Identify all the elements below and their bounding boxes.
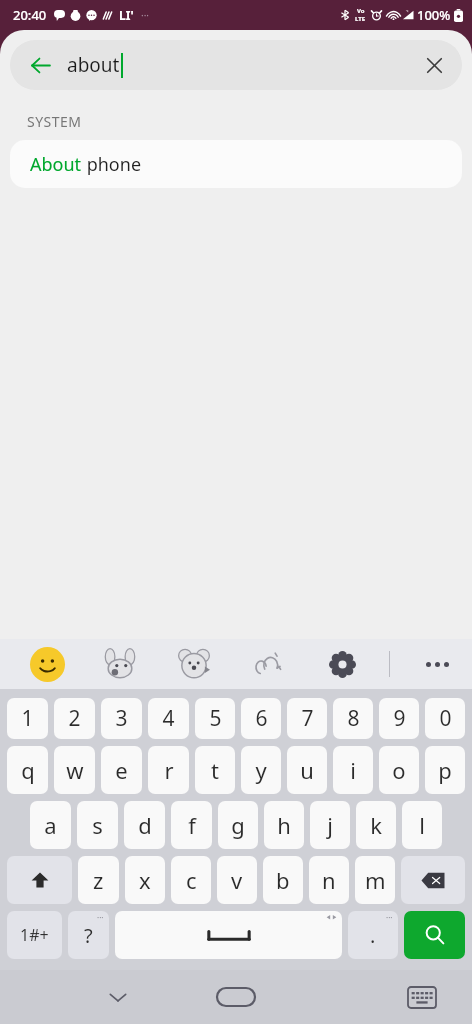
staticText: 20:40 (13, 6, 47, 24)
button[interactable]: t (195, 746, 235, 794)
button[interactable]: Handwriting (247, 643, 289, 685)
staticText: f (188, 810, 196, 840)
button[interactable]: Home (209, 977, 263, 1017)
staticText: Vo (357, 7, 365, 15)
button[interactable]: 3 (101, 698, 142, 739)
button[interactable]: Bear sticker (173, 643, 215, 685)
staticText: y (255, 755, 267, 785)
staticText: 100% (417, 6, 451, 24)
button[interactable]: Animated sticker (99, 643, 141, 685)
button[interactable]: Clear search (420, 51, 448, 79)
staticText: ··· (97, 912, 104, 923)
staticText: h (277, 810, 291, 840)
button[interactable]: m (355, 856, 395, 904)
staticText: phone (82, 152, 142, 177)
button[interactable]: 0 (425, 698, 465, 739)
staticText: e (115, 755, 128, 785)
button[interactable]: 5 (195, 698, 235, 739)
staticText: 0 (439, 704, 452, 733)
staticText: z (93, 865, 104, 895)
button[interactable]: Backspace (401, 856, 465, 904)
staticText: j (327, 810, 333, 840)
button[interactable]: 9 (379, 698, 419, 739)
staticText: ? (84, 922, 93, 949)
staticText: s (92, 810, 103, 840)
button[interactable]: 7 (287, 698, 327, 739)
staticText: u (300, 755, 314, 785)
staticText: m (365, 865, 386, 895)
staticText: r (164, 755, 174, 785)
button[interactable]: g (218, 801, 258, 849)
button[interactable]: Space (115, 911, 342, 959)
staticText: 1#+ (20, 924, 49, 946)
button[interactable]: i (333, 746, 373, 794)
button[interactable]: z (78, 856, 119, 904)
button[interactable]: Keyboard settings (321, 643, 363, 685)
staticText: 8 (347, 704, 360, 733)
button[interactable]: d (124, 801, 165, 849)
button[interactable]: q (7, 746, 48, 794)
button[interactable]: Switch keyboard (400, 975, 444, 1019)
staticText: 4 (162, 704, 175, 733)
staticText: LI' (119, 7, 134, 23)
button[interactable]: c (171, 856, 211, 904)
staticText: 5 (209, 704, 222, 733)
button[interactable]: j (310, 801, 350, 849)
button[interactable]: Hide keyboard (96, 975, 140, 1019)
button[interactable]: w (54, 746, 95, 794)
button[interactable]: h (264, 801, 304, 849)
staticText: 9 (393, 704, 406, 733)
button[interactable]: k (356, 801, 396, 849)
button[interactable]: f (171, 801, 212, 849)
staticText: ··· (386, 912, 393, 923)
button[interactable]: s (77, 801, 118, 849)
button[interactable]: e (101, 746, 142, 794)
button[interactable]: Search (404, 911, 465, 959)
staticText: k (370, 810, 382, 840)
button[interactable]: Back (26, 51, 54, 79)
button[interactable]: u (287, 746, 327, 794)
staticText: w (66, 755, 84, 785)
button[interactable]: ? (68, 911, 109, 959)
staticText: g (231, 810, 245, 840)
staticText: 3 (115, 704, 128, 733)
button[interactable]: About (10, 140, 462, 188)
staticText: i (350, 755, 356, 785)
button[interactable]: n (309, 856, 349, 904)
staticText: . (370, 922, 376, 949)
staticText: x (139, 865, 151, 895)
staticText: 7 (301, 704, 314, 733)
button[interactable]: 1#+ (7, 911, 62, 959)
staticText: q (21, 755, 35, 785)
staticText: t (211, 755, 219, 785)
button[interactable]: a (30, 801, 71, 849)
button[interactable]: 2 (54, 698, 95, 739)
button[interactable]: o (379, 746, 419, 794)
staticText: About (30, 152, 82, 177)
button[interactable]: r (148, 746, 189, 794)
staticText: about (67, 52, 120, 78)
staticText: v (231, 865, 243, 895)
button[interactable]: b (263, 856, 303, 904)
button[interactable]: x (125, 856, 165, 904)
staticText: LTE (355, 15, 366, 23)
button[interactable]: l (402, 801, 442, 849)
staticText: b (276, 865, 290, 895)
button[interactable]: . (348, 911, 398, 959)
staticText: p (438, 755, 452, 785)
button[interactable]: p (425, 746, 465, 794)
button[interactable]: Emoji (26, 643, 68, 685)
button[interactable]: 1 (7, 698, 48, 739)
staticText: o (392, 755, 406, 785)
staticText: 1 (21, 704, 34, 733)
staticText: a (44, 810, 57, 840)
button[interactable]: 4 (148, 698, 189, 739)
button[interactable]: 6 (241, 698, 281, 739)
button[interactable]: More options (416, 643, 458, 685)
button[interactable]: Back (10, 40, 462, 90)
button[interactable]: 8 (333, 698, 373, 739)
button[interactable]: v (217, 856, 257, 904)
button[interactable]: Shift (7, 856, 72, 904)
staticText: 2 (68, 704, 81, 733)
button[interactable]: y (241, 746, 281, 794)
